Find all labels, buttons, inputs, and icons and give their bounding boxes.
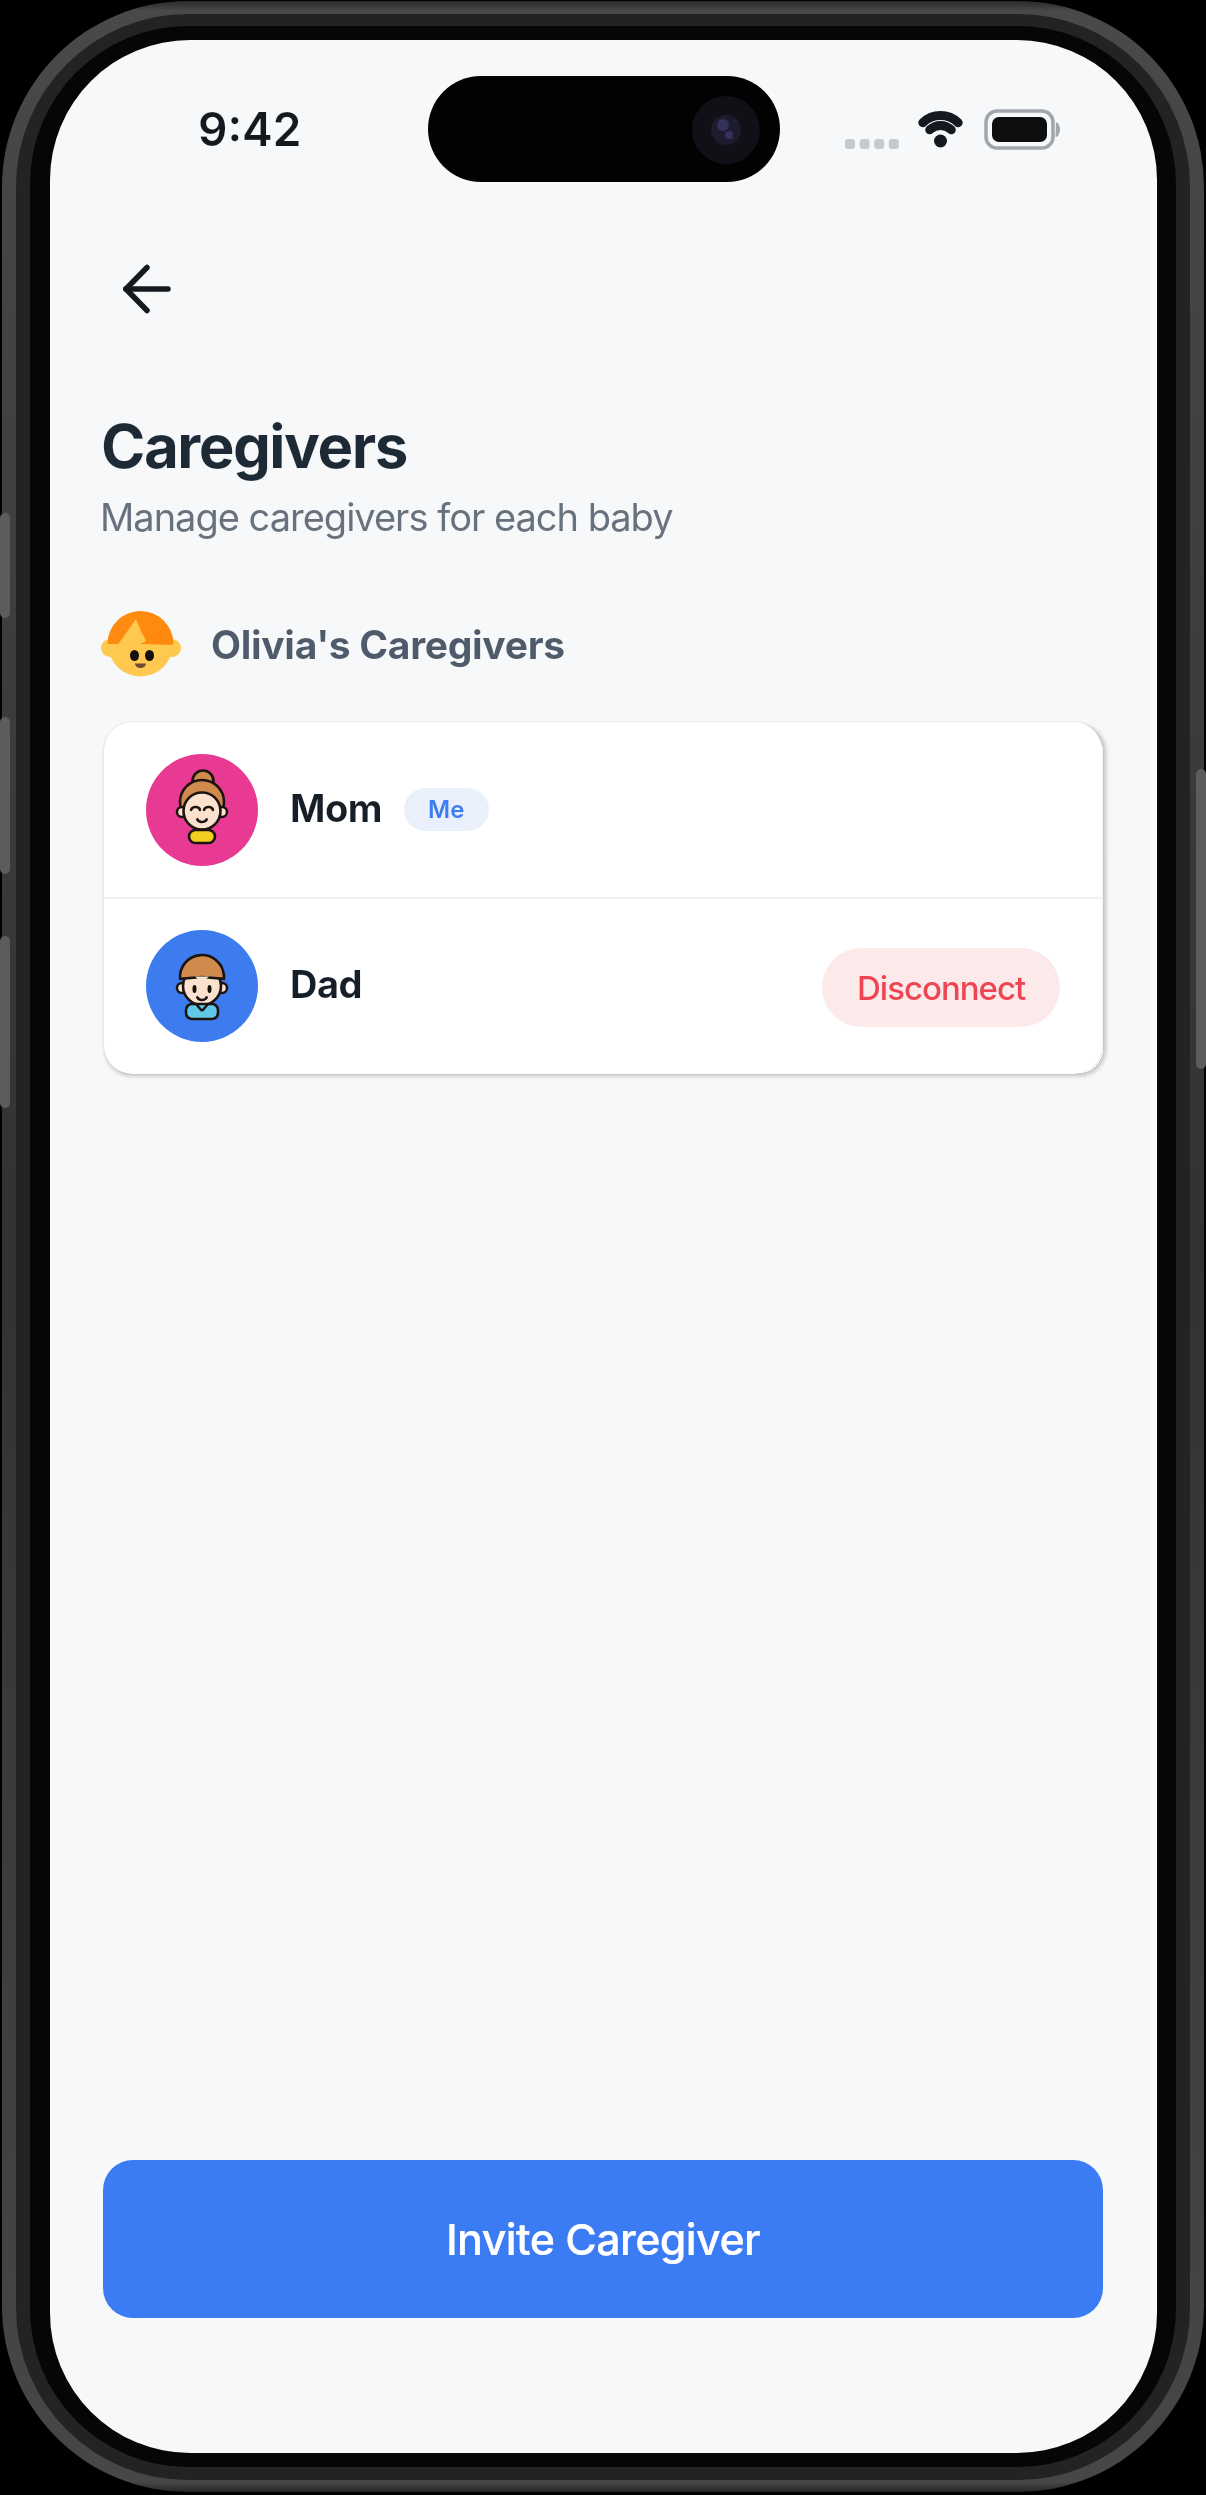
staticText: Me [428,795,465,824]
staticText: Olivia's Caregivers [211,621,565,668]
staticText: Invite Caregiver [446,2213,761,2265]
button[interactable]: Invite Caregiver [103,2160,1103,2318]
staticText: Disconnect [857,968,1026,1008]
button[interactable]: Mom [104,722,1102,898]
staticText: Mom [290,785,382,831]
staticText: Caregivers [101,410,407,483]
button[interactable]: Dad [104,898,1102,1074]
staticText: 9:42 [198,101,302,157]
button[interactable] [90,235,200,345]
button[interactable]: Disconnect [822,948,1060,1027]
staticText: Manage caregivers for each baby [100,494,673,540]
staticText: Dad [290,961,362,1007]
